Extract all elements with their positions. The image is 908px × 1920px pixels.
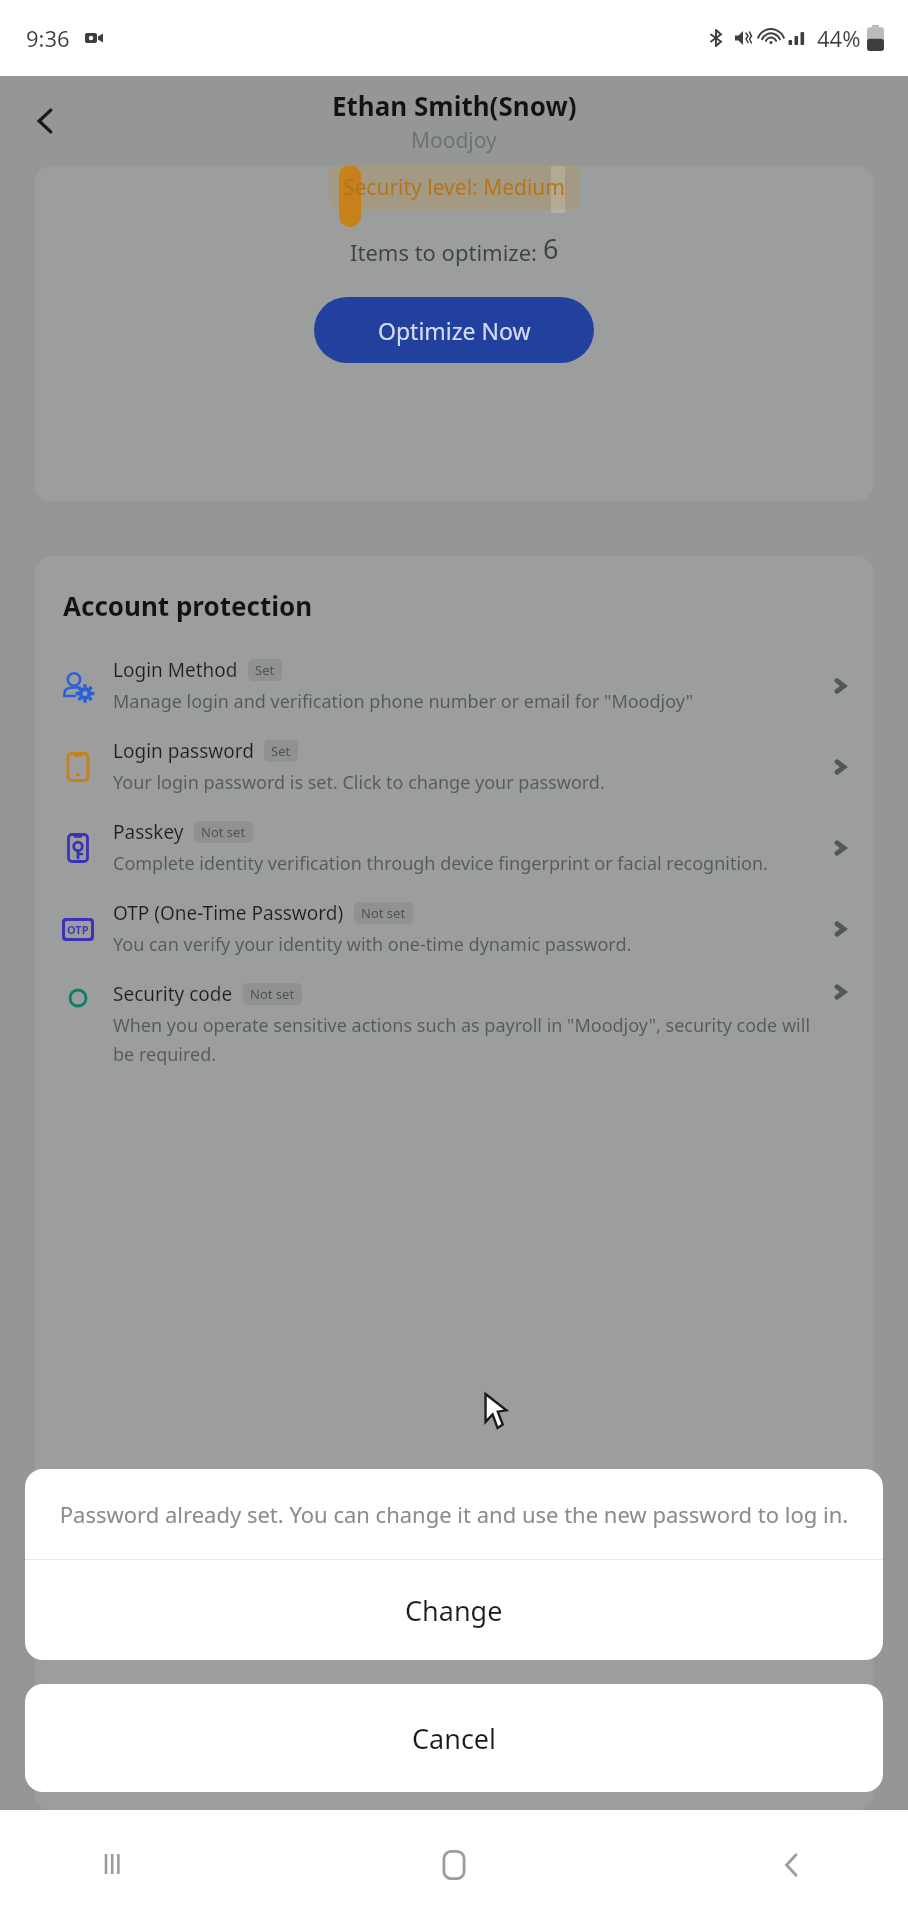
staticText: When you operate sensitive actions such … bbox=[113, 1013, 819, 1066]
staticText: Ethan Smith(Snow) bbox=[332, 88, 577, 123]
staticText: Security level: Medium bbox=[343, 173, 565, 202]
staticText: Items to optimize: bbox=[350, 237, 543, 267]
staticText: You can verify your identity with one-ti… bbox=[113, 932, 632, 957]
button[interactable]: Optimize Now bbox=[314, 297, 594, 363]
button[interactable]: Back bbox=[756, 1829, 828, 1901]
button[interactable]: OTP bbox=[35, 888, 873, 969]
button[interactable]: Back bbox=[16, 91, 76, 151]
staticText: 44% bbox=[817, 23, 861, 53]
button[interactable]: Cancel bbox=[25, 1684, 883, 1792]
staticText: Change bbox=[405, 1592, 503, 1629]
staticText: Set bbox=[271, 742, 291, 760]
staticText: Account protection bbox=[63, 588, 313, 623]
button[interactable]: Security code bbox=[35, 969, 873, 1066]
staticText: Not set bbox=[201, 823, 246, 841]
staticText: Login password bbox=[113, 738, 254, 764]
button[interactable]: Login Method bbox=[35, 645, 873, 726]
staticText: Cancel bbox=[412, 1720, 497, 1757]
staticText: 6 bbox=[543, 230, 559, 267]
button[interactable]: Login password bbox=[35, 726, 873, 807]
staticText: Complete identity verification through d… bbox=[113, 851, 768, 876]
staticText: Passkey bbox=[113, 819, 184, 845]
staticText: Moodjoy bbox=[411, 126, 497, 155]
staticText: Not set bbox=[250, 985, 295, 1003]
staticText: Not set bbox=[361, 904, 406, 922]
staticText: OTP (One-Time Password) bbox=[113, 900, 344, 926]
button[interactable]: Home bbox=[418, 1829, 490, 1901]
staticText: 9:36 bbox=[26, 23, 70, 53]
staticText: Login Method bbox=[113, 657, 238, 683]
button[interactable]: Change bbox=[25, 1560, 883, 1660]
staticText: Security code bbox=[113, 981, 233, 1007]
staticText: OTP bbox=[67, 922, 89, 937]
staticText: Optimize Now bbox=[378, 315, 531, 346]
staticText: Your login password is set. Click to cha… bbox=[113, 770, 605, 795]
staticText: Manage login and verification phone numb… bbox=[113, 689, 693, 714]
button[interactable]: Passkey bbox=[35, 807, 873, 888]
button[interactable]: Recent apps bbox=[80, 1829, 152, 1901]
staticText: Set bbox=[255, 661, 275, 679]
staticText: Password already set. You can change it … bbox=[55, 1499, 853, 1529]
